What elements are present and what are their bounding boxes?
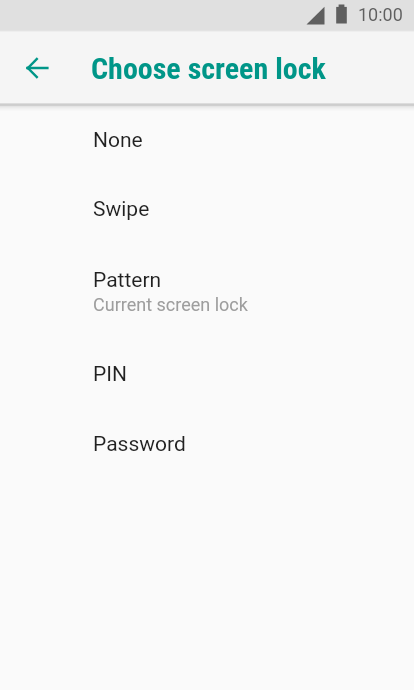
staticText: PIN	[93, 361, 127, 386]
staticText: None	[93, 127, 143, 152]
staticText: Choose screen lock	[91, 52, 326, 86]
staticText: 10:00	[358, 4, 403, 25]
button[interactable]: Password	[0, 414, 414, 484]
staticText: Pattern	[93, 267, 162, 292]
staticText: Current screen lock	[93, 294, 248, 315]
button[interactable]: Swipe	[0, 179, 414, 249]
button[interactable]: Navigate up	[13, 44, 61, 92]
staticText: Password	[93, 431, 186, 456]
button[interactable]: PIN	[0, 344, 414, 414]
button[interactable]: Pattern	[0, 249, 414, 344]
staticText: Swipe	[93, 196, 150, 221]
button[interactable]: None	[0, 109, 414, 179]
